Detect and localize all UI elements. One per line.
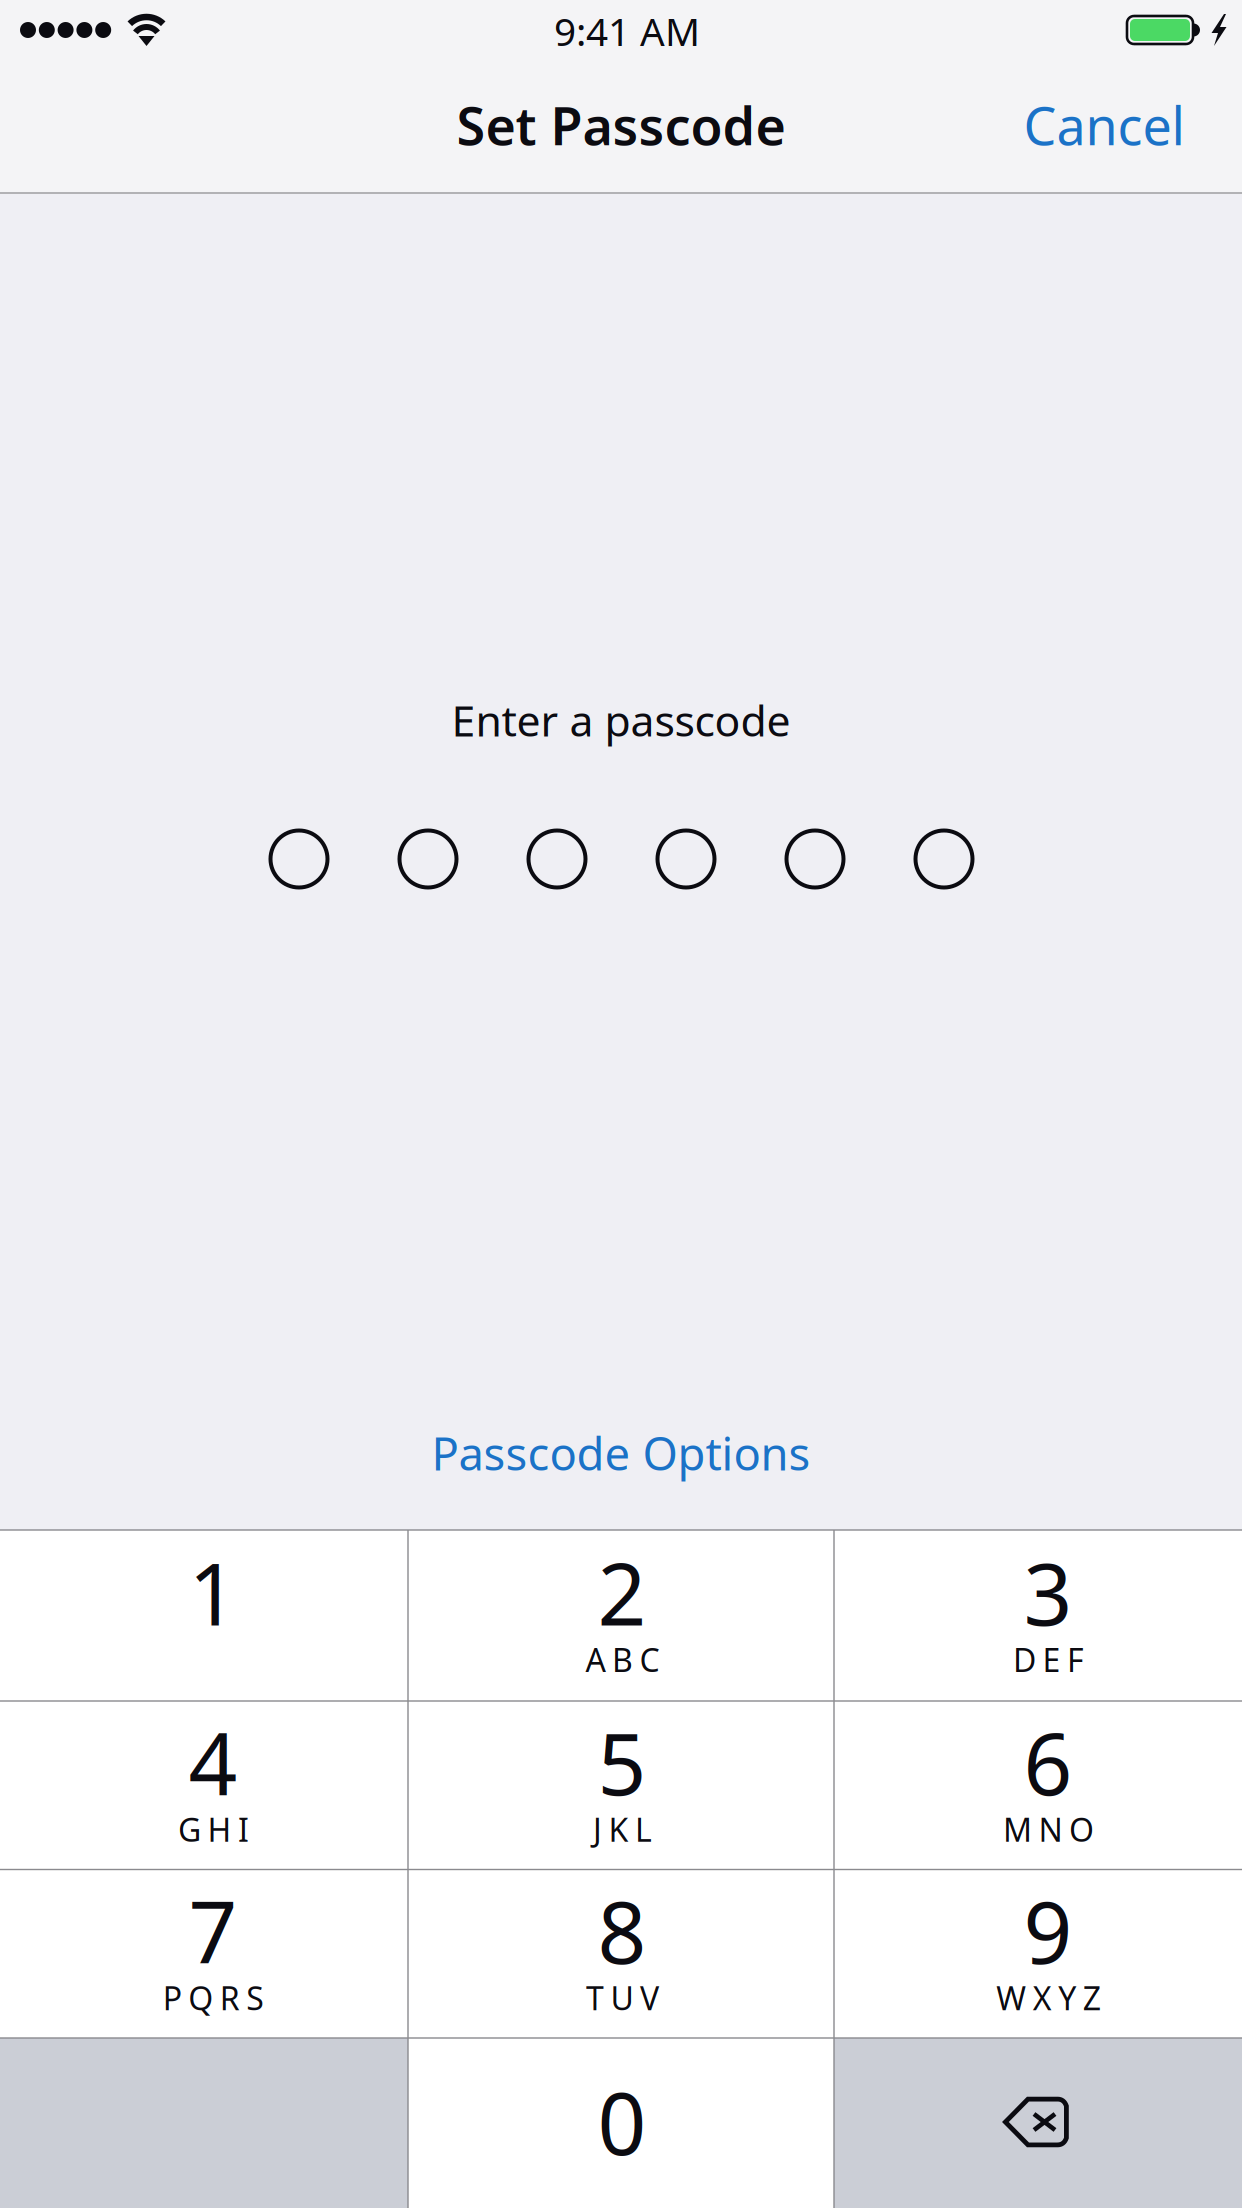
button[interactable]: Delete (832, 2037, 1240, 2207)
button[interactable]: 4 (9, 1701, 417, 1869)
button[interactable]: 3 (844, 1530, 1242, 1701)
staticText: 7 (188, 1874, 237, 1987)
button[interactable]: 1 (9, 1530, 417, 1701)
button[interactable]: Blank (0, 2038, 408, 2208)
staticText: Set Passcode (456, 90, 785, 160)
button[interactable]: 9 (844, 1869, 1242, 2038)
staticText: TUV (586, 1976, 659, 2019)
button[interactable]: 7 (9, 1869, 417, 2038)
staticText: 2 (597, 1536, 646, 1649)
staticText: 6 (1023, 1706, 1072, 1819)
button[interactable]: 0 (409, 2038, 835, 2208)
staticText: 1 (188, 1536, 237, 1649)
staticText: JKL (593, 1808, 652, 1850)
button[interactable]: 5 (409, 1701, 835, 1869)
button[interactable]: 8 (409, 1869, 835, 2038)
button[interactable]: Cancel (995, 60, 1212, 190)
staticText: ABC (585, 1638, 659, 1681)
button[interactable]: Passcode Options (401, 1401, 840, 1505)
staticText: PQRS (163, 1976, 264, 2019)
staticText: 3 (1023, 1536, 1072, 1649)
staticText: Enter a passcode (451, 692, 790, 748)
staticText: 4 (188, 1706, 237, 1819)
staticText: 0 (597, 2065, 646, 2179)
button[interactable]: 6 (844, 1701, 1242, 1869)
staticText: 8 (597, 1874, 646, 1987)
staticText: DEF (1013, 1638, 1084, 1681)
staticText: 9 (1023, 1874, 1072, 1987)
staticText: WXYZ (996, 1976, 1101, 2019)
staticText: 5 (597, 1706, 646, 1819)
staticText: 9:41 AM (554, 5, 700, 57)
button[interactable]: 2 (409, 1530, 835, 1701)
staticText: MNO (1003, 1808, 1094, 1850)
staticText: Passcode Options (431, 1423, 810, 1483)
staticText: Cancel (1023, 90, 1184, 160)
staticText: GHI (178, 1808, 249, 1850)
